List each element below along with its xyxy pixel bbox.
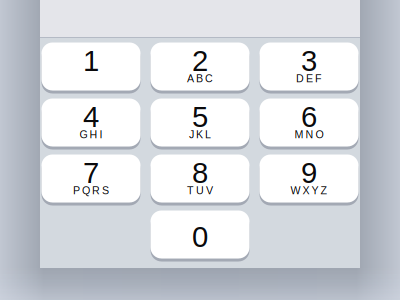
staticText: P Q R S	[73, 184, 109, 196]
button[interactable]: 6	[259, 97, 358, 148]
staticText: D E F	[296, 72, 322, 84]
staticText: J K L	[189, 128, 211, 140]
staticText: M N O	[294, 128, 323, 140]
staticText: 0	[192, 220, 208, 253]
button[interactable]: 4	[41, 97, 140, 148]
button[interactable]: 7	[41, 153, 140, 204]
staticText: 8	[192, 156, 208, 189]
button[interactable]: 2	[150, 41, 249, 92]
button[interactable]: 8	[150, 153, 249, 204]
staticText: W X Y Z	[290, 184, 327, 196]
staticText: T U V	[187, 184, 213, 196]
button[interactable]: 5	[150, 97, 249, 148]
staticText: G H I	[79, 128, 102, 140]
staticText: 9	[301, 156, 317, 189]
staticText: A B C	[187, 72, 213, 84]
staticText: 7	[83, 156, 99, 189]
button[interactable]: 0	[150, 209, 249, 260]
button[interactable]: 3	[259, 41, 358, 92]
staticText: 6	[301, 100, 317, 133]
staticText: 3	[301, 44, 317, 77]
button[interactable]: 1	[41, 41, 140, 92]
staticText: 5	[192, 100, 208, 133]
staticText: 2	[192, 44, 208, 77]
button[interactable]: 9	[259, 153, 358, 204]
staticText: 1	[83, 44, 99, 77]
staticText: 4	[83, 100, 99, 133]
